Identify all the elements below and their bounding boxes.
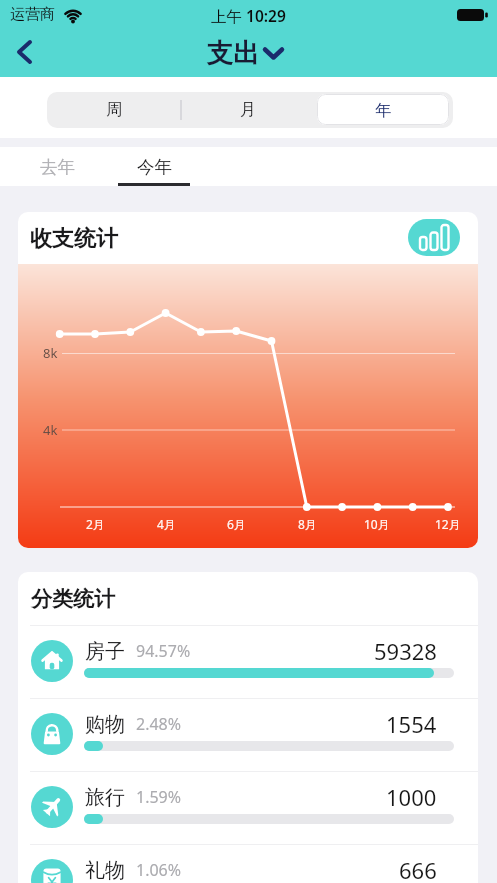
staticText: 4月 bbox=[157, 516, 176, 532]
staticText: 旅行 bbox=[85, 785, 125, 810]
button[interactable]: 今年 bbox=[118, 147, 190, 186]
staticText: 礼物 bbox=[85, 858, 125, 883]
button[interactable]: 年 bbox=[316, 92, 450, 128]
staticText: 4k bbox=[43, 421, 58, 439]
staticText: 运营商 bbox=[10, 5, 55, 24]
button[interactable]: 房子 bbox=[18, 625, 478, 698]
staticText: 收支统计 bbox=[30, 225, 118, 253]
button[interactable]: 支出 bbox=[207, 37, 284, 70]
button[interactable] bbox=[408, 219, 460, 256]
button[interactable]: 周 bbox=[47, 92, 181, 128]
staticText: 1.06% bbox=[136, 859, 182, 881]
staticText: 支出 bbox=[207, 37, 259, 70]
staticText: 2.48% bbox=[136, 713, 182, 735]
staticText: 10月 bbox=[364, 516, 390, 532]
button[interactable]: 购物 bbox=[18, 698, 478, 771]
staticText: 6月 bbox=[227, 516, 246, 532]
staticText: 去年 bbox=[40, 156, 75, 178]
staticText: 8k bbox=[43, 344, 58, 362]
staticText: 上午 10:29 bbox=[211, 5, 286, 26]
staticText: 分类统计 bbox=[31, 586, 115, 612]
staticText: 购物 bbox=[85, 712, 125, 737]
staticText: 房子 bbox=[85, 639, 125, 664]
staticText: 今年 bbox=[137, 156, 172, 178]
staticText: 月 bbox=[240, 100, 256, 120]
button[interactable]: 旅行 bbox=[18, 771, 478, 844]
staticText: 1000 bbox=[386, 782, 437, 812]
staticText: 8月 bbox=[298, 516, 317, 532]
button[interactable]: 去年 bbox=[22, 147, 92, 186]
button[interactable] bbox=[6, 34, 42, 70]
staticText: 2月 bbox=[86, 516, 105, 532]
staticText: 12月 bbox=[435, 516, 461, 532]
staticText: 1554 bbox=[386, 709, 437, 739]
button[interactable]: 月 bbox=[181, 92, 315, 128]
staticText: 666 bbox=[399, 855, 437, 883]
staticText: 59328 bbox=[374, 636, 437, 666]
staticText: 1.59% bbox=[136, 786, 182, 808]
staticText: 年 bbox=[375, 100, 392, 121]
staticText: 周 bbox=[106, 100, 122, 120]
staticText: 94.57% bbox=[136, 640, 191, 662]
button[interactable]: 礼物 bbox=[18, 844, 478, 883]
